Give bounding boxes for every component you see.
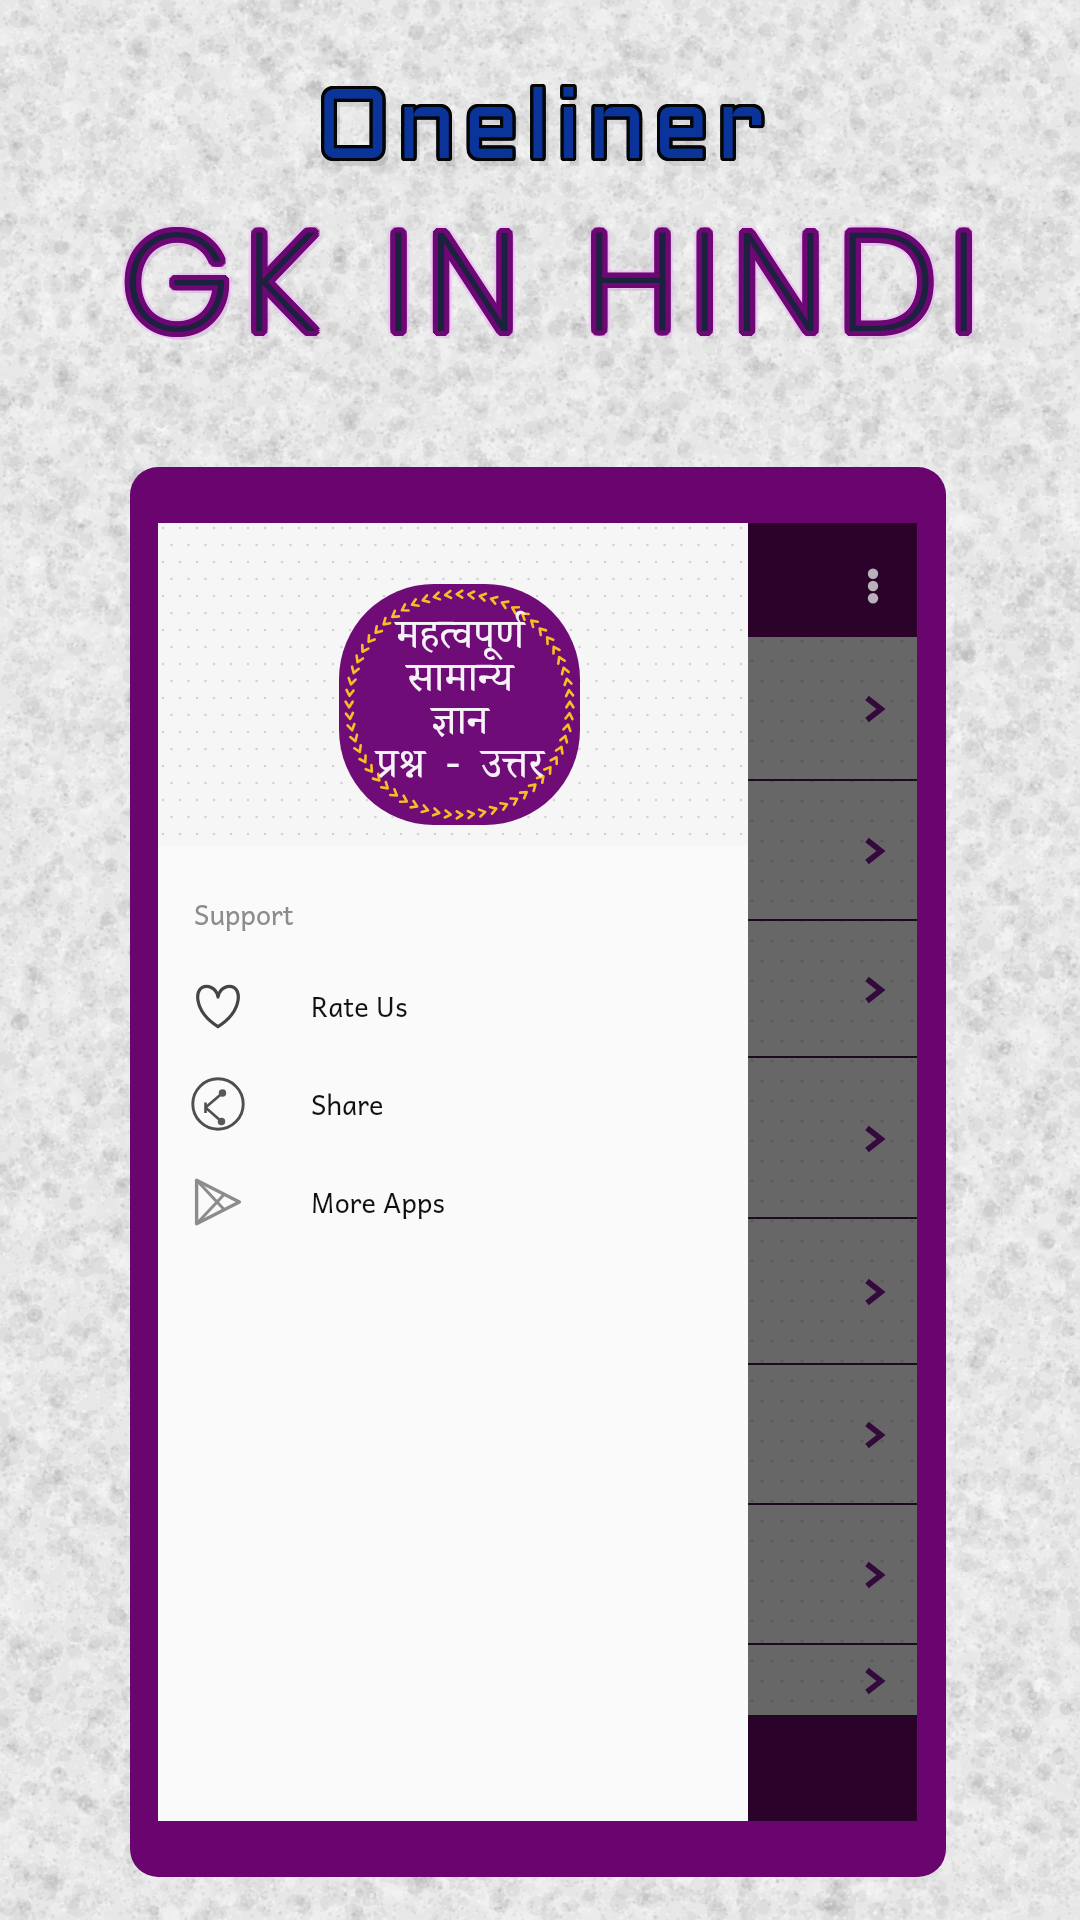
staticText: Share <box>311 1082 384 1126</box>
button[interactable] <box>158 1058 917 1219</box>
staticText: GK IN HINDI <box>130 185 1000 380</box>
staticText: GK IN HINDI <box>116 190 986 385</box>
staticText: GK IN HINDI <box>118 188 988 383</box>
button[interactable] <box>158 637 917 781</box>
staticText: GK IN HINDI <box>127 187 997 382</box>
staticText: Oneliner <box>313 85 769 175</box>
staticText: Oneliner <box>316 91 772 181</box>
button[interactable] <box>158 1365 917 1505</box>
staticText: Oneliner <box>312 90 768 180</box>
staticText: GK IN HINDI <box>120 190 990 385</box>
staticText: GK IN HINDI <box>118 178 988 373</box>
staticText: Oneliner <box>316 85 772 175</box>
staticText: GK IN HINDI <box>123 178 993 373</box>
staticText: GK IN HINDI <box>122 190 992 385</box>
staticText: Support <box>194 892 294 936</box>
staticText: GK IN HINDI <box>128 190 998 385</box>
staticText: GK IN HINDI <box>116 180 986 375</box>
staticText: GK IN HINDI <box>117 187 987 382</box>
staticText: Oneliner <box>312 87 768 177</box>
staticText: GK IN HINDI <box>120 180 990 375</box>
staticText: GK IN HINDI <box>121 192 991 387</box>
staticText: GK IN HINDI <box>117 183 987 378</box>
staticText: Oneliner <box>321 96 777 186</box>
staticText: Oneliner <box>312 86 768 176</box>
button[interactable]: More Apps <box>158 1153 748 1251</box>
staticText: GK IN HINDI <box>118 182 988 377</box>
staticText: GK IN HINDI <box>128 180 998 375</box>
staticText: GK IN HINDI <box>126 188 996 383</box>
staticText: GK IN HINDI <box>129 188 999 383</box>
staticText: GK IN HINDI <box>121 178 991 373</box>
staticText: Rate Us <box>311 984 408 1028</box>
staticText: GK IN HINDI <box>119 189 989 384</box>
staticText: महत्वपूर्ण सामान्य ज्ञान प्रश्न - उत्तर <box>376 609 544 803</box>
staticText: Oneliner <box>315 88 771 178</box>
staticText: GK IN HINDI <box>115 182 985 377</box>
staticText: GK IN HINDI <box>126 182 996 377</box>
staticText: GK IN HINDI <box>115 188 985 383</box>
staticText: GK IN HINDI <box>125 189 995 384</box>
button[interactable] <box>158 1505 917 1645</box>
staticText: GK IN HINDI <box>129 182 999 377</box>
staticText: GK IN HINDI <box>119 181 989 376</box>
staticText: Oneliner <box>315 85 771 175</box>
staticText: GK IN HINDI <box>127 185 997 380</box>
staticText: Oneliner <box>313 91 769 181</box>
staticText: Oneliner <box>317 91 773 181</box>
staticText: Oneliner <box>318 90 774 180</box>
staticText: More Apps <box>311 1180 446 1224</box>
staticText: Oneliner <box>312 88 768 178</box>
staticText: GK IN HINDI <box>118 192 988 387</box>
staticText: GK IN HINDI <box>127 183 997 378</box>
button[interactable] <box>158 1645 917 1717</box>
button[interactable]: Share <box>158 1055 748 1153</box>
staticText: Oneliner <box>314 85 770 175</box>
staticText: GK IN HINDI <box>122 180 992 375</box>
staticText: GK IN HINDI <box>124 180 994 375</box>
staticText: GK IN HINDI <box>122 185 992 380</box>
button[interactable] <box>158 781 917 921</box>
staticText: GK IN HINDI <box>114 185 984 380</box>
staticText: Oneliner <box>315 91 771 181</box>
staticText: Oneliner <box>318 89 774 179</box>
staticText: GK IN HINDI <box>126 178 996 373</box>
staticText: GK IN HINDI <box>125 181 995 376</box>
staticText: Oneliner <box>317 85 773 175</box>
staticText: Oneliner <box>314 91 770 181</box>
button[interactable] <box>158 921 917 1058</box>
staticText: GK IN HINDI <box>126 192 996 387</box>
button[interactable]: Rate Us <box>158 957 748 1055</box>
staticText: Oneliner <box>318 86 774 176</box>
staticText: Oneliner <box>312 89 768 179</box>
staticText: GK IN HINDI <box>128 193 998 388</box>
staticText: Oneliner <box>318 88 774 178</box>
staticText: GK IN HINDI <box>124 190 994 385</box>
button[interactable] <box>158 1219 917 1365</box>
staticText: GK IN HINDI <box>123 192 993 387</box>
staticText: Oneliner <box>318 87 774 177</box>
button[interactable]: More options <box>849 556 897 604</box>
staticText: GK IN HINDI <box>117 185 987 380</box>
